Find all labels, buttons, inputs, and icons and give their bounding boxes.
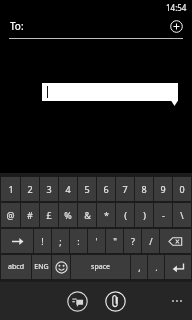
button[interactable]: 4	[59, 177, 77, 201]
staticText: :	[77, 235, 80, 247]
button[interactable]: #	[21, 203, 39, 227]
button[interactable]: -	[154, 203, 172, 227]
button[interactable]: '	[88, 229, 105, 253]
button[interactable]: )	[135, 203, 153, 227]
staticText: %	[64, 209, 72, 221]
button[interactable]: 5	[78, 177, 96, 201]
staticText: ;	[59, 235, 62, 247]
button[interactable]	[42, 83, 178, 101]
button[interactable]: "	[106, 229, 123, 253]
button[interactable]: Backspace	[160, 229, 191, 253]
button[interactable]: ,	[131, 255, 147, 279]
staticText: 3	[46, 183, 52, 195]
button[interactable]: &	[78, 203, 96, 227]
button[interactable]: ?	[124, 229, 141, 253]
staticText: '	[95, 235, 98, 247]
button[interactable]: 7	[116, 177, 134, 201]
staticText: 2	[27, 183, 33, 195]
button[interactable]: %	[59, 203, 77, 227]
staticText: ,	[138, 261, 141, 273]
button[interactable]: 3	[40, 177, 58, 201]
button[interactable]: ;	[52, 229, 69, 253]
button[interactable]: Attach	[101, 287, 129, 315]
button[interactable]: 8	[135, 177, 153, 201]
button[interactable]: Tab	[1, 229, 33, 253]
button[interactable]: *	[97, 203, 115, 227]
button[interactable]: /	[142, 229, 159, 253]
staticText: 6	[103, 183, 109, 195]
staticText: To:	[10, 19, 24, 33]
button[interactable]: Emoji	[52, 255, 70, 279]
staticText: .	[155, 261, 158, 273]
staticText: 9	[160, 183, 166, 195]
staticText: 5	[84, 183, 90, 195]
staticText: 8	[141, 183, 147, 195]
button[interactable]: Send message	[63, 287, 91, 315]
staticText: 1	[8, 183, 14, 195]
button[interactable]: £	[40, 203, 58, 227]
staticText: space	[91, 262, 110, 272]
staticText: 7	[122, 183, 128, 195]
button[interactable]: @	[1, 203, 20, 227]
staticText: 4	[65, 183, 71, 195]
button[interactable]: 2	[21, 177, 39, 201]
button[interactable]: (	[116, 203, 134, 227]
staticText: ENG	[34, 262, 49, 272]
button[interactable]: Add recipient	[168, 18, 185, 35]
staticText: 14:54	[166, 2, 187, 13]
staticText: abcd	[8, 262, 24, 272]
staticText: \	[180, 209, 184, 221]
button[interactable]: :	[70, 229, 87, 253]
staticText: -	[162, 209, 165, 221]
staticText: (	[124, 209, 127, 221]
button[interactable]: Enter	[165, 255, 191, 279]
staticText: *	[104, 209, 109, 221]
staticText: )	[143, 209, 146, 221]
staticText: £	[46, 209, 52, 221]
button[interactable]: 9	[154, 177, 172, 201]
staticText: /	[149, 235, 153, 247]
button[interactable]: space	[71, 255, 130, 279]
staticText: @	[6, 209, 15, 221]
button[interactable]: 0	[173, 177, 191, 201]
button[interactable]: ENG	[32, 255, 51, 279]
staticText: "	[113, 235, 117, 247]
staticText: #	[27, 209, 33, 221]
button[interactable]: .	[148, 255, 164, 279]
staticText: ?	[131, 235, 135, 247]
button[interactable]: 1	[1, 177, 20, 201]
staticText: &	[84, 209, 91, 221]
button[interactable]: abcd	[1, 255, 31, 279]
button[interactable]: 6	[97, 177, 115, 201]
staticText: !	[41, 235, 44, 247]
button[interactable]: \	[173, 203, 191, 227]
button[interactable]: More options	[168, 296, 186, 306]
staticText: 0	[179, 183, 185, 195]
button[interactable]: !	[34, 229, 51, 253]
